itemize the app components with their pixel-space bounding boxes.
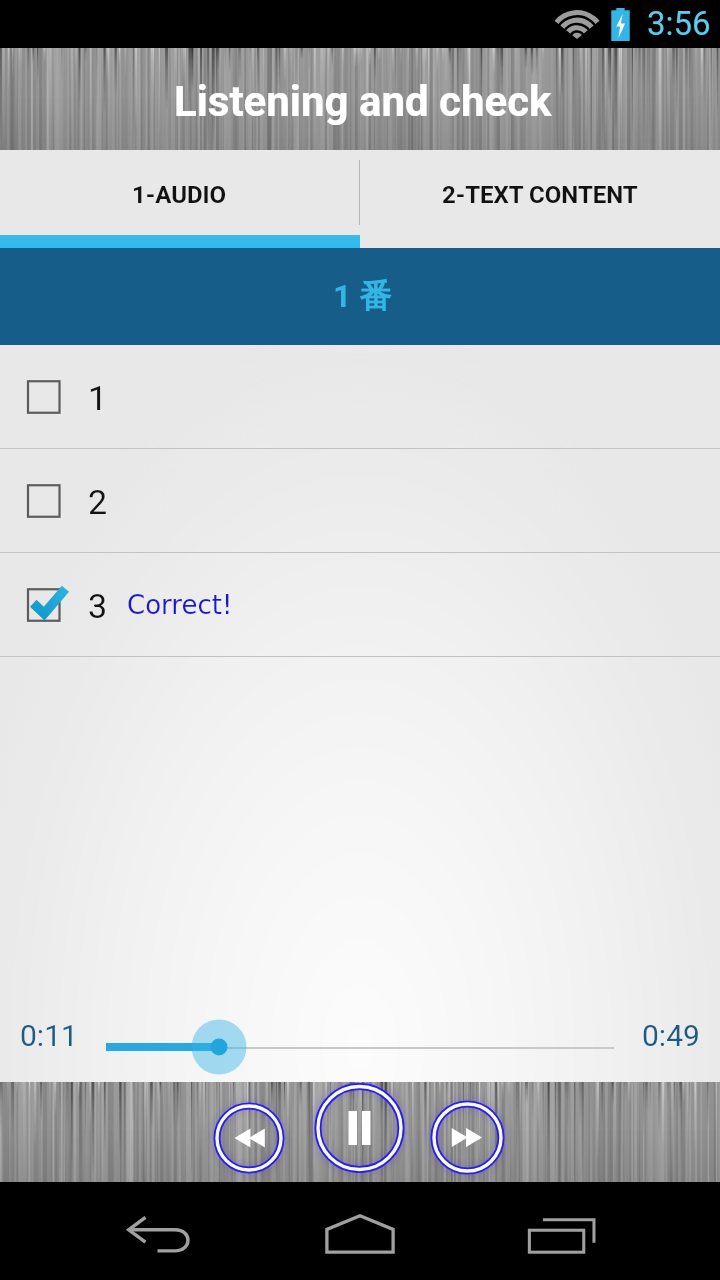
staticText: 2 — [88, 482, 108, 522]
staticText: 1 番 — [333, 276, 392, 316]
staticText: 1-AUDIO — [132, 181, 227, 209]
button[interactable]: 1-AUDIO — [0, 150, 359, 235]
staticText: Listening and check — [174, 77, 552, 126]
button[interactable]: Pause — [303, 1082, 416, 1178]
staticText: Correct! — [127, 590, 233, 620]
button[interactable]: 1 — [0, 345, 720, 448]
staticText: 1 — [88, 378, 108, 418]
button[interactable]: 2 — [0, 449, 720, 552]
button[interactable]: Recent apps — [512, 1198, 612, 1264]
button[interactable]: Back — [110, 1198, 210, 1264]
button[interactable]: Rewind — [202, 1091, 296, 1182]
staticText: 2-TEXT CONTENT — [442, 181, 638, 209]
staticText: 0:11 — [20, 1018, 78, 1053]
button[interactable]: Home — [310, 1198, 410, 1264]
button[interactable]: 3 — [0, 553, 720, 656]
button[interactable]: Fast forward — [419, 1089, 516, 1182]
button[interactable]: 2-TEXT CONTENT — [360, 150, 720, 235]
staticText: 0:49 — [642, 1018, 700, 1053]
staticText: 3:56 — [647, 4, 711, 43]
staticText: 3 — [88, 586, 108, 626]
